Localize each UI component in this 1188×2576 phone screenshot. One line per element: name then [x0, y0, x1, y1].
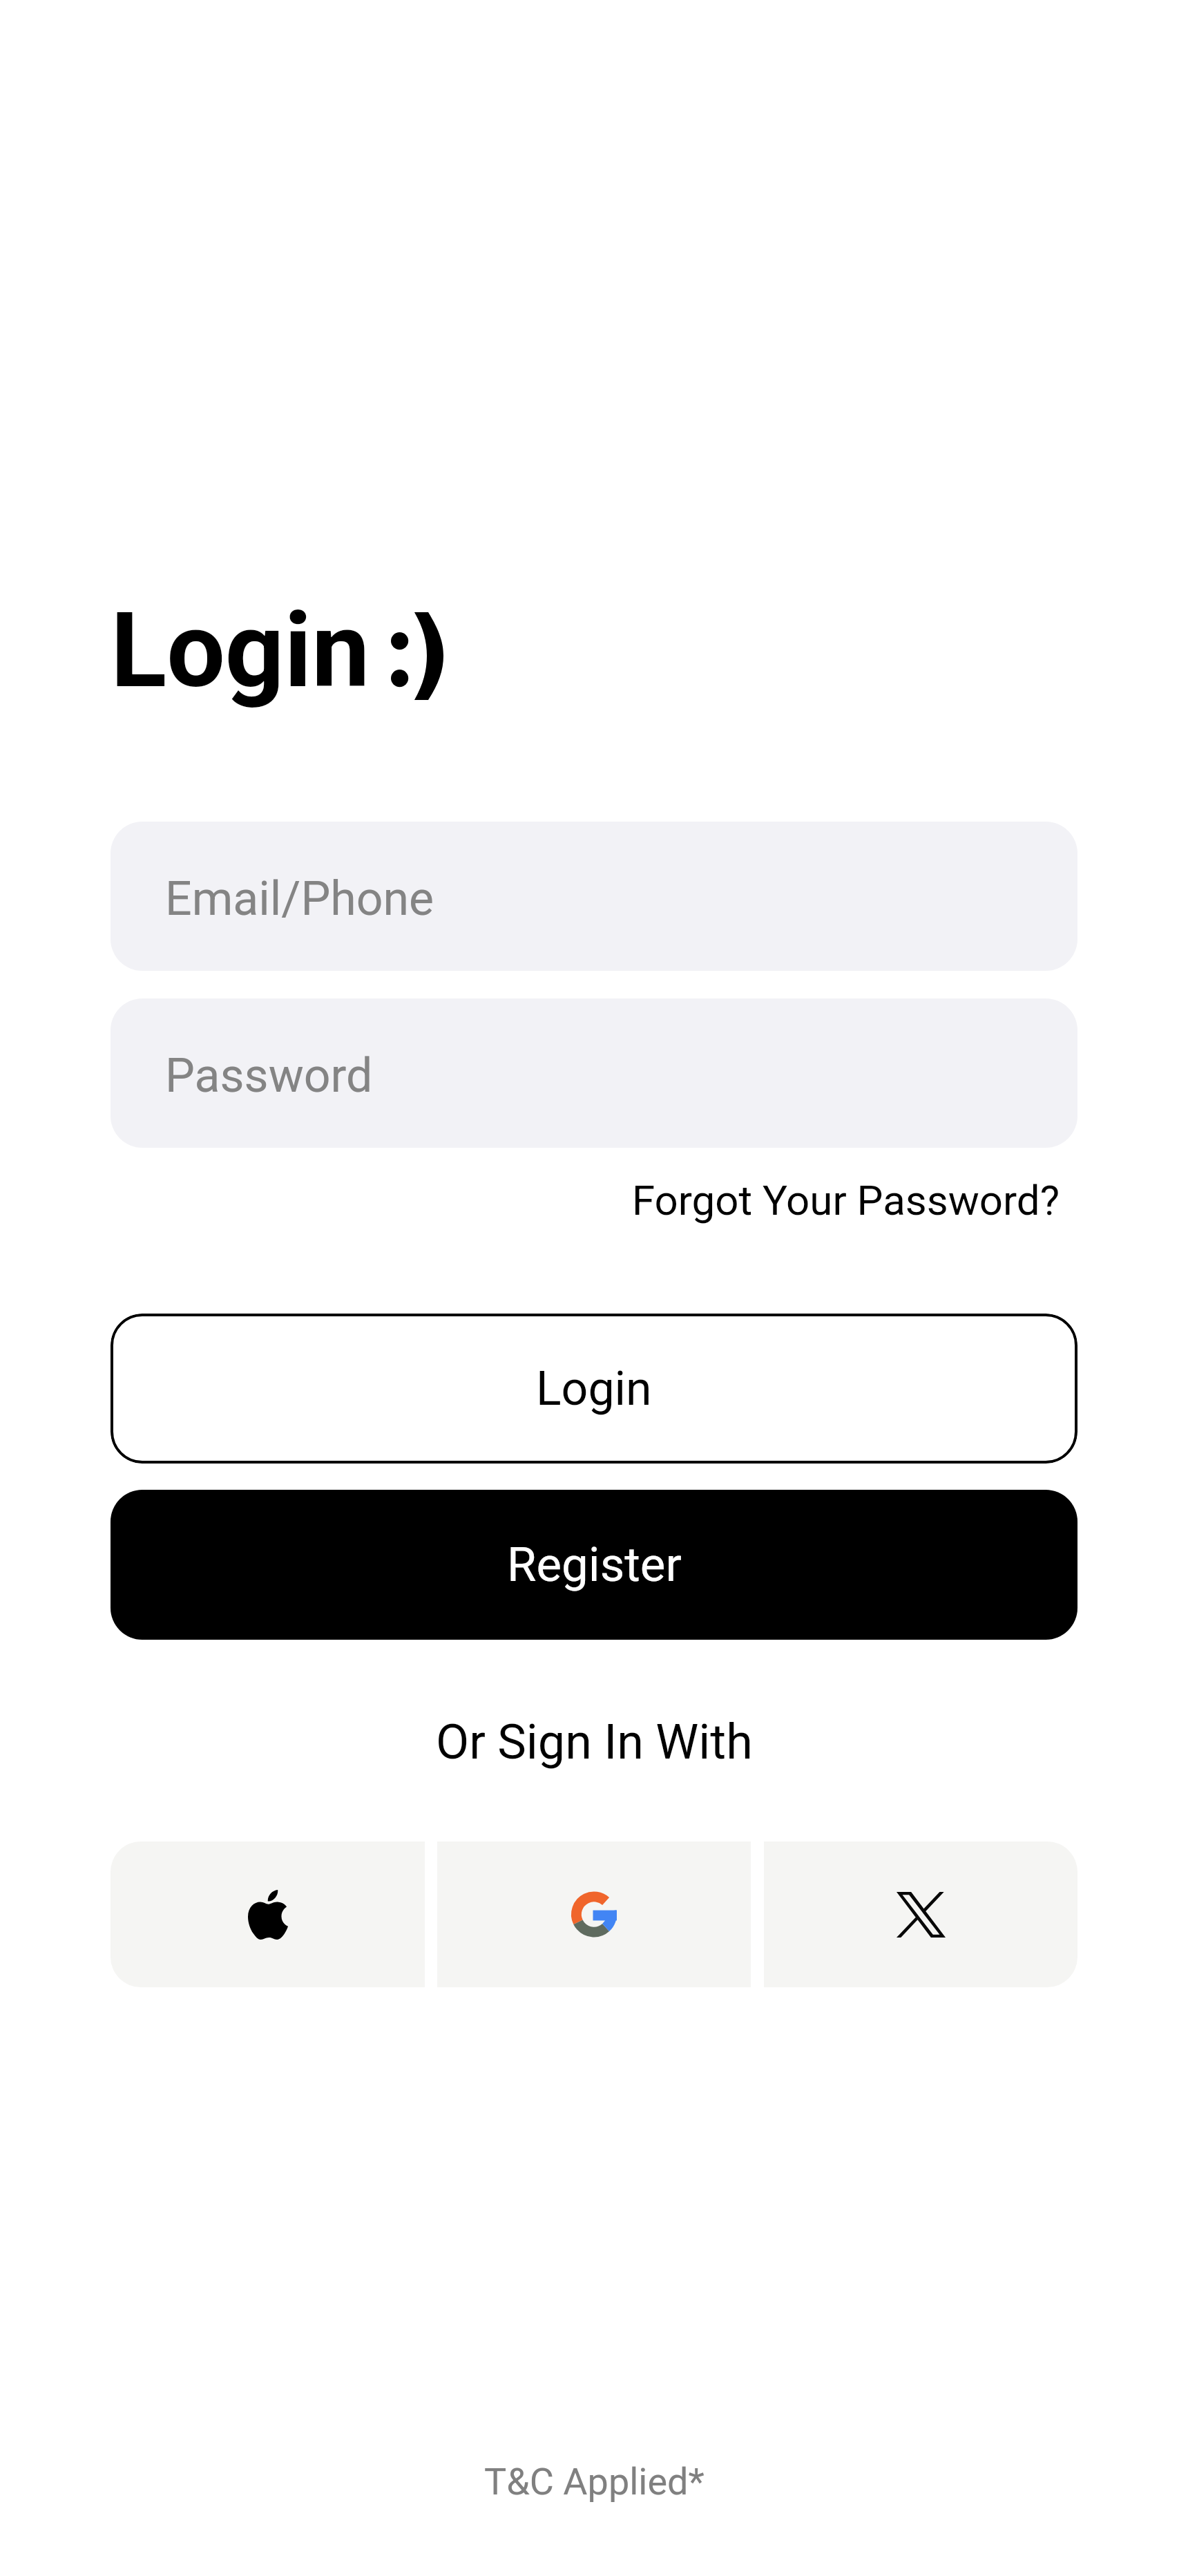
button[interactable]: Sign in with Apple — [111, 1841, 425, 1987]
button[interactable]: Email/Phone — [111, 822, 1077, 971]
staticText: Register — [507, 1537, 682, 1593]
button[interactable]: Forgot Your Password? — [614, 1166, 1077, 1234]
staticText: Or Sign In With — [436, 1714, 753, 1770]
staticText: T&C Applied* — [484, 2460, 705, 2503]
button[interactable]: Password — [111, 998, 1077, 1148]
button[interactable]: Login — [111, 1314, 1077, 1464]
staticText: Forgot Your Password? — [632, 1176, 1060, 1224]
button[interactable]: Sign in with Google — [437, 1841, 751, 1987]
button[interactable]: Register — [111, 1490, 1077, 1640]
staticText: Password — [165, 1048, 373, 1104]
button[interactable]: Sign in with X — [764, 1841, 1077, 1987]
staticText: Email/Phone — [165, 871, 434, 927]
staticText: Login — [536, 1361, 652, 1417]
staticText: Login — [111, 590, 370, 712]
other: smiley — [387, 608, 452, 708]
